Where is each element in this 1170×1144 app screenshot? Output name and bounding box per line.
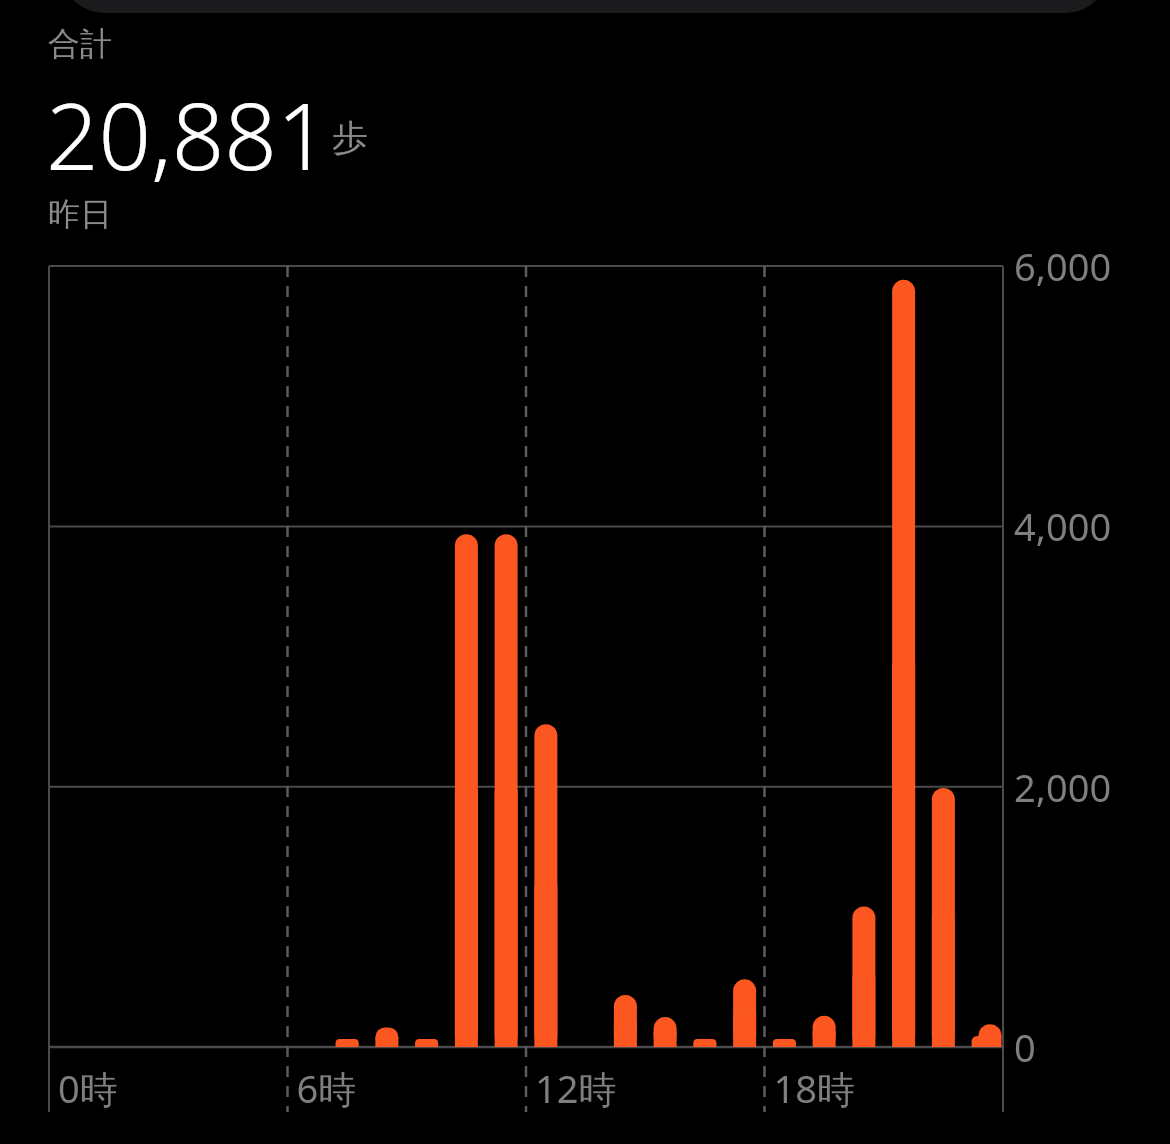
- button[interactable]: Yesterday step count chart, 20,881 steps: [0, 0, 1170, 1144]
